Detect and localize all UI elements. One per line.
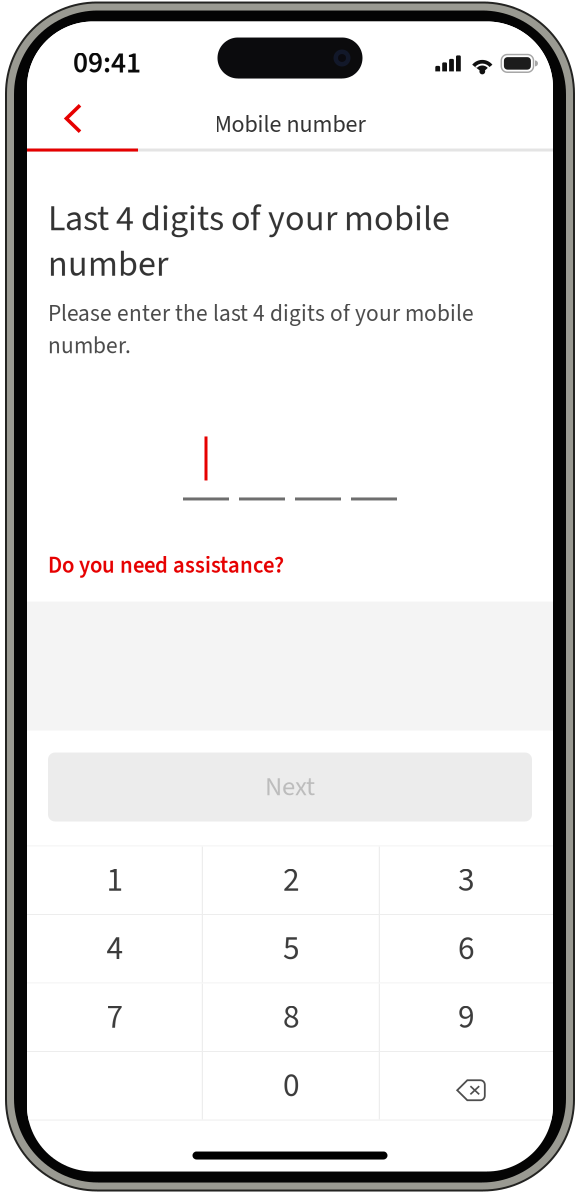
button[interactable]: 6 [380,915,553,982]
button[interactable]: 3 [380,846,553,914]
staticText: 7 [106,993,123,1041]
button[interactable]: Next [48,752,532,821]
staticText: Mobile number [214,107,365,142]
staticText: Next [265,768,315,806]
staticText: 4 [106,925,123,972]
staticText: 6 [458,925,475,972]
button[interactable]: 1 [27,846,203,914]
button[interactable]: 4 [27,915,203,982]
button[interactable]: 2 [203,846,380,914]
staticText: 0 [283,1062,300,1109]
button[interactable]: Back [27,103,108,145]
staticText: 09:41 [73,42,141,84]
staticText: 5 [283,925,300,972]
button[interactable]: 0 [203,1052,380,1119]
staticText: 3 [458,856,475,904]
button[interactable]: 9 [380,983,553,1051]
staticText: 1 [106,856,123,904]
button[interactable]: 7 [27,983,203,1051]
button[interactable]: 5 [203,915,380,982]
staticText: 9 [458,993,475,1041]
button[interactable]: Delete [380,1052,553,1119]
staticText: Do you need assistance? [48,549,284,582]
staticText: Please enter the last 4 digits of your m… [48,297,474,362]
staticText: 8 [283,993,300,1041]
button[interactable]: 8 [203,983,380,1051]
button[interactable]: Do you need assistance? [48,541,284,590]
button[interactable] [27,1052,203,1119]
staticText: Last 4 digits of your mobile number [48,193,450,290]
staticText: 2 [283,856,300,904]
